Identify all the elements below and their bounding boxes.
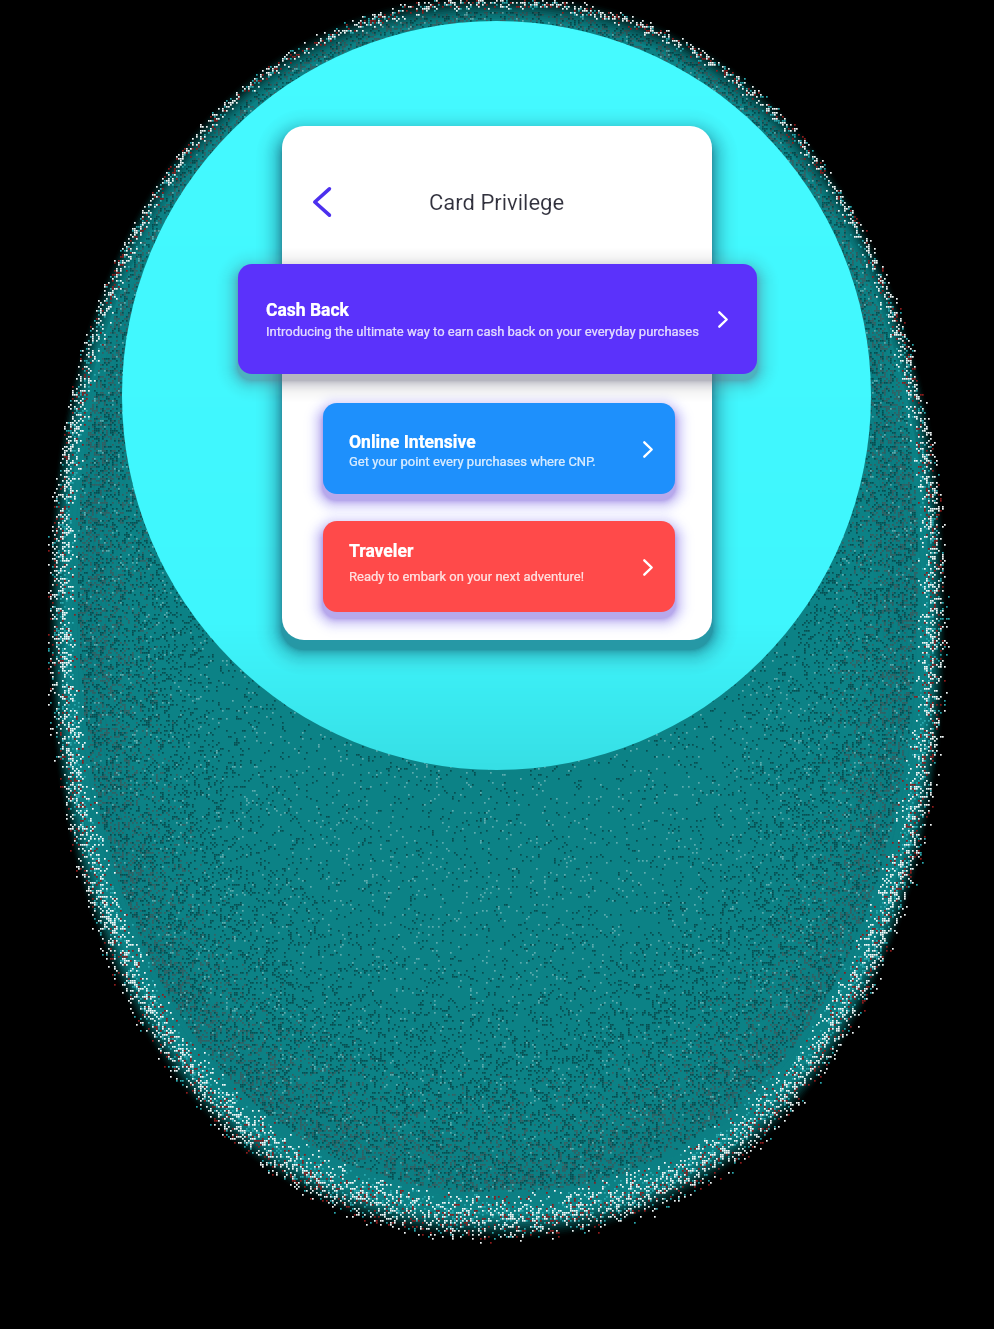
- button[interactable]: Online Intensive: [323, 403, 675, 494]
- button[interactable]: Back: [298, 178, 346, 226]
- staticText: Online Intensive: [349, 432, 476, 453]
- staticText: Card Privilege: [429, 190, 565, 216]
- button[interactable]: Cash Back: [238, 264, 757, 374]
- staticText: Cash Back: [266, 300, 349, 321]
- button[interactable]: Open Online Intensive: [636, 437, 660, 461]
- button[interactable]: Open Cash Back: [711, 307, 735, 331]
- staticText: Get your point every purchases where CNP…: [349, 454, 596, 469]
- staticText: Ready to embark on your next adventure!: [349, 569, 585, 584]
- staticText: Traveler: [349, 541, 414, 562]
- button[interactable]: Open Traveler: [636, 555, 660, 579]
- staticText: Introducing the ultimate way to earn cas…: [266, 324, 699, 339]
- button[interactable]: Traveler: [323, 521, 675, 612]
